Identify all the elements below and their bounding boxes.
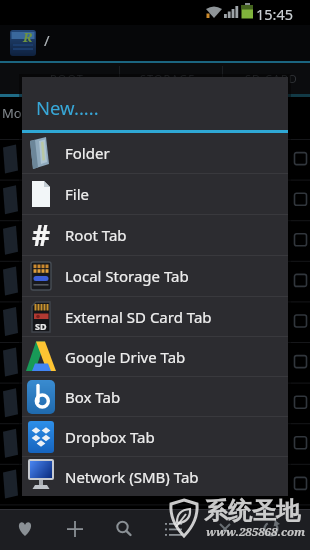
- staticText: 15:45: [256, 4, 294, 24]
- button[interactable]: Google Drive Tab: [22, 337, 288, 376]
- button[interactable]: Network (SMB) Tab: [22, 457, 288, 496]
- staticText: Network (SMB) Tab: [65, 467, 199, 487]
- staticText: Folder: [65, 143, 110, 163]
- button[interactable]: SD: [22, 297, 288, 336]
- button[interactable]: [51, 509, 102, 550]
- button[interactable]: [102, 509, 154, 550]
- staticText: Root Tab: [65, 225, 127, 245]
- staticText: 系统圣地: [204, 496, 300, 526]
- staticText: Local Storage Tab: [65, 266, 189, 286]
- staticText: www.285868.com: [206, 524, 306, 540]
- staticText: ROOT: [50, 71, 84, 86]
- staticText: #: [32, 216, 51, 254]
- staticText: R: [23, 28, 33, 46]
- staticText: New.....: [36, 95, 99, 120]
- button[interactable]: Local Storage Tab: [22, 256, 288, 296]
- button[interactable]: [206, 509, 258, 550]
- button[interactable]: Box Tab: [22, 377, 288, 416]
- staticText: Box Tab: [65, 387, 121, 407]
- staticText: /: [44, 30, 50, 50]
- button[interactable]: Dropbox Tab: [22, 417, 288, 456]
- staticText: External SD Card Tab: [65, 307, 212, 327]
- staticText: STORAGE: [140, 71, 196, 86]
- button[interactable]: [258, 509, 310, 550]
- staticText: File: [65, 184, 89, 204]
- staticText: SD: [35, 320, 47, 332]
- button[interactable]: File: [22, 174, 288, 214]
- staticText: Dropbox Tab: [65, 427, 155, 447]
- button[interactable]: [154, 509, 206, 550]
- button[interactable]: Folder: [22, 133, 288, 173]
- staticText: Google Drive Tab: [65, 347, 186, 367]
- button[interactable]: #: [22, 215, 288, 255]
- staticText: Mou: [2, 104, 30, 122]
- staticText: SD CARD: [245, 71, 298, 86]
- button[interactable]: [0, 509, 51, 550]
